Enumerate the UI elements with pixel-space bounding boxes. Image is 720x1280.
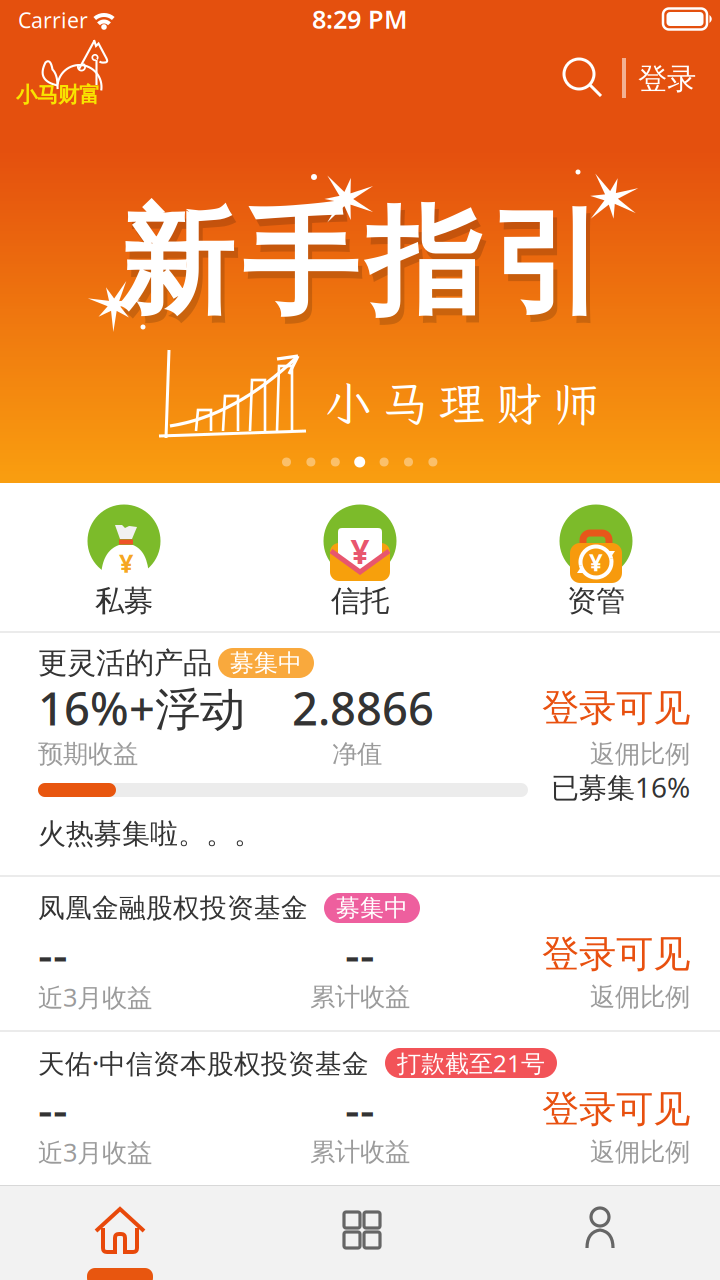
staticText: --: [345, 924, 375, 984]
staticText: 登录可见: [542, 931, 690, 977]
staticText: --: [38, 924, 68, 984]
staticText: 累计收益: [310, 1136, 410, 1167]
staticText: 凤凰金融股权投资基金: [38, 892, 308, 924]
staticText: 2.8866: [292, 678, 434, 738]
button[interactable]: 凤凰金融股权投资基金: [0, 877, 720, 1030]
staticText: 信托: [331, 583, 389, 619]
button[interactable]: Search: [559, 54, 607, 102]
staticText: 更灵活的产品: [38, 645, 212, 681]
staticText: 已募集16%: [551, 768, 690, 806]
button[interactable]: Home: [90, 1202, 150, 1258]
button[interactable]: Products: [332, 1202, 392, 1258]
staticText: 登录: [638, 61, 696, 97]
staticText: 8:29 PM: [312, 2, 408, 36]
button[interactable]: ¥: [0, 483, 240, 631]
staticText: 募集中: [336, 893, 408, 923]
staticText: 预期收益: [38, 738, 138, 769]
staticText: ¥: [119, 546, 133, 580]
staticText: 私募: [95, 583, 153, 619]
staticText: 16%+浮动: [38, 678, 245, 738]
staticText: 募集中: [230, 648, 302, 678]
button[interactable]: ¥: [480, 483, 720, 631]
staticText: 新手指引: [122, 199, 610, 341]
staticText: Carrier: [18, 6, 88, 34]
staticText: 新手指引: [118, 192, 606, 334]
staticText: ¥: [350, 529, 369, 573]
staticText: 小马财富: [16, 82, 100, 108]
button[interactable]: 登录: [625, 54, 709, 104]
staticText: --: [38, 1079, 68, 1139]
staticText: 返佣比例: [590, 1136, 690, 1167]
staticText: 火热募集啦。。。: [38, 817, 262, 851]
staticText: 净值: [332, 738, 382, 769]
staticText: 登录可见: [542, 685, 690, 731]
button[interactable]: 天佑·中信资本股权投资基金: [0, 1032, 720, 1185]
button[interactable]: Profile: [570, 1202, 630, 1258]
button[interactable]: 更灵活的产品: [0, 633, 720, 875]
staticText: 小马理财师: [324, 372, 599, 434]
staticText: 近3月收益: [38, 980, 152, 1014]
button[interactable]: ¥: [240, 483, 480, 631]
staticText: --: [345, 1079, 375, 1139]
staticText: 返佣比例: [590, 738, 690, 769]
staticText: 近3月收益: [38, 1135, 152, 1169]
staticText: 天佑·中信资本股权投资基金: [38, 1045, 369, 1081]
staticText: 累计收益: [310, 981, 410, 1012]
staticText: 资管: [567, 583, 625, 619]
staticText: 打款截至21号: [397, 1047, 545, 1079]
staticText: 登录可见: [542, 1086, 690, 1132]
staticText: ¥: [589, 546, 603, 578]
staticText: 返佣比例: [590, 981, 690, 1012]
